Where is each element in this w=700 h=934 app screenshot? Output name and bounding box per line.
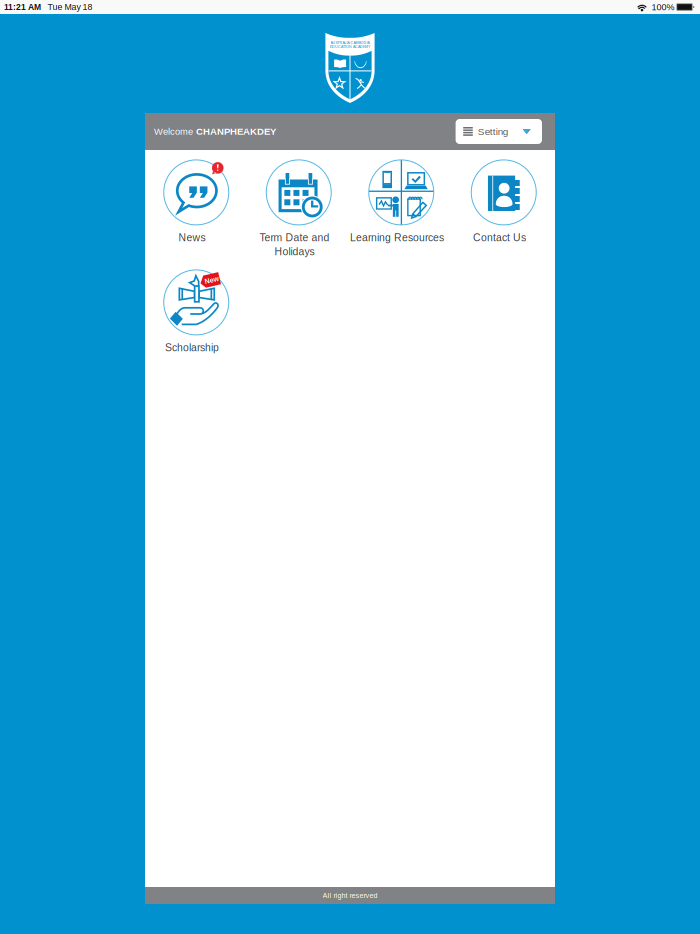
button[interactable]: New [145, 260, 247, 370]
staticText: Tue May 18 [47, 2, 92, 12]
staticText: Learning Resources [350, 232, 444, 243]
staticText: All right reserved [322, 891, 377, 899]
staticText: Scholarship [165, 342, 219, 353]
staticText: EDUCATION ACADEMY [330, 45, 370, 49]
staticText: 11:21 AM [4, 2, 41, 12]
staticText: Term Date and [259, 232, 329, 243]
staticText: New [205, 276, 220, 284]
staticText: News [178, 232, 205, 243]
staticText: CHANPHEAKDEY [196, 126, 276, 137]
staticText: 100% [651, 2, 674, 12]
staticText: Holidays [274, 246, 314, 257]
staticText: Contact Us [473, 232, 526, 243]
button[interactable]: Setting [456, 119, 542, 144]
staticText: AUSTRALIA CAMBODIA [330, 41, 369, 45]
button[interactable]: Contact Us [452, 150, 555, 260]
button[interactable]: Learning Resources [350, 150, 452, 260]
staticText: Welcome [154, 126, 196, 137]
button[interactable]: News [145, 150, 247, 260]
staticText: Setting [478, 126, 508, 137]
button[interactable]: Term Date and [247, 150, 350, 260]
